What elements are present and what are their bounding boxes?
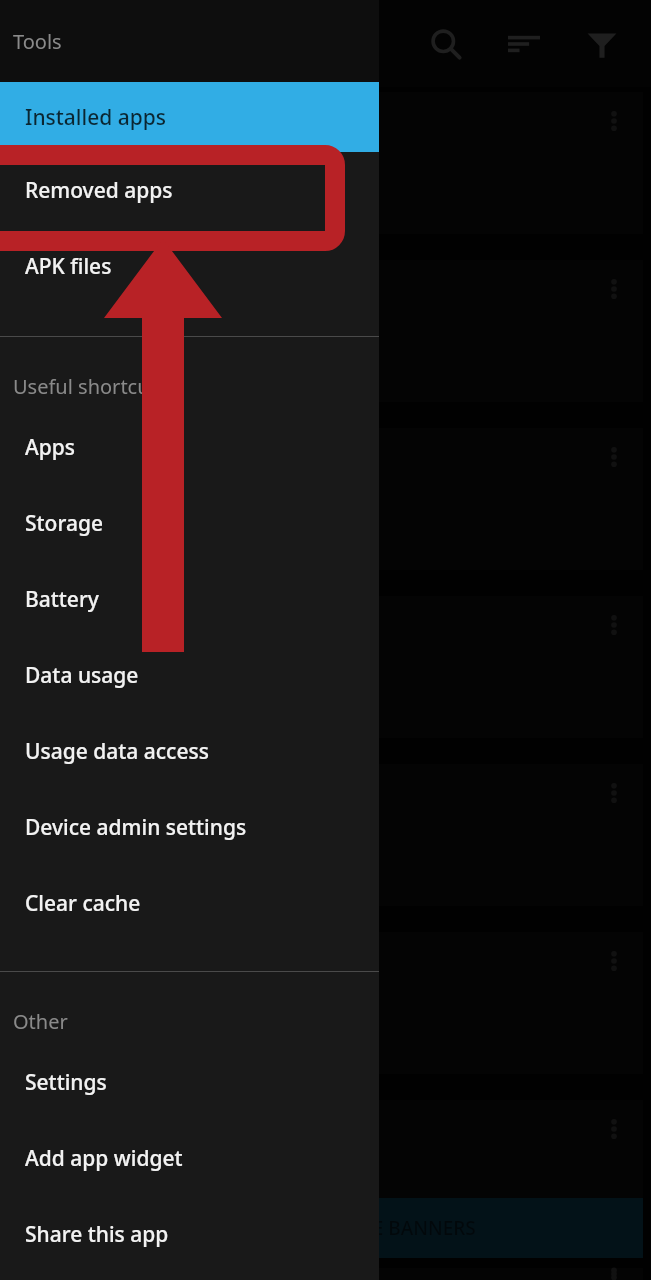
staticText: com.example.droid, date installed: 01/03…: [28, 485, 362, 539]
staticText: Apps: [25, 433, 76, 462]
staticText: Clear cache: [25, 889, 141, 918]
staticText: Device admin settings: [25, 813, 247, 842]
button[interactable]: com.example.droid, date installed: 01/03…: [8, 428, 643, 570]
staticText: com.example.torrz, date installed: 23/01…: [28, 149, 358, 203]
staticText: com.ghisler.android.TotalCommander, vers…: [28, 821, 365, 875]
button[interactable]: Apps: [0, 409, 379, 485]
staticText: Battery: [25, 585, 99, 614]
staticText: Installed apps: [25, 103, 166, 132]
staticText: Settings: [25, 1068, 107, 1097]
staticText: Other: [13, 1008, 68, 1035]
staticText: HIDE BANNERS: [338, 1215, 476, 1241]
button[interactable]: com.ghisler.android.TotalCommander, vers…: [8, 764, 643, 906]
button[interactable]: Device admin settings: [0, 789, 379, 865]
staticText: Data usage: [25, 661, 139, 690]
button[interactable]: com.example.android, date installed: 14/…: [8, 1100, 643, 1242]
button[interactable]: Removed apps: [0, 152, 379, 228]
staticText: Add app widget: [25, 1144, 183, 1173]
button[interactable]: More options: [585, 1268, 643, 1280]
button[interactable]: com.example.one, date installed: 02/05/2…: [8, 932, 643, 1074]
button[interactable]: Usage data access: [0, 713, 379, 789]
button[interactable]: com.x.y, date installed: 18/04/2023, ver…: [8, 596, 643, 738]
button[interactable]: com.example.torrz, date installed: 23/01…: [8, 92, 643, 234]
button[interactable]: Installed apps: [0, 82, 379, 152]
button[interactable]: com.example.player, date installed: 11/0…: [8, 260, 643, 402]
button[interactable]: com.example.shoplist, date installed: 18…: [8, 1268, 643, 1280]
button[interactable]: Filter: [563, 5, 641, 83]
staticText: Usage data access: [25, 737, 209, 766]
staticText: Share this app: [25, 1220, 169, 1249]
button[interactable]: Search: [407, 5, 485, 83]
button[interactable]: Storage: [0, 485, 379, 561]
staticText: Storage: [25, 509, 103, 538]
staticText: com.example.one, date installed: 02/05/2…: [28, 989, 358, 1043]
button[interactable]: Settings: [0, 1044, 379, 1120]
staticText: Removed apps: [25, 176, 173, 205]
button[interactable]: Share this app: [0, 1196, 379, 1272]
button[interactable]: HIDE BANNERS: [8, 1198, 643, 1258]
staticText: com.x.y, date installed: 18/04/2023, ver…: [28, 653, 343, 707]
button[interactable]: Add app widget: [0, 1120, 379, 1196]
staticText: com.example.android, date installed: 14/…: [28, 1157, 358, 1211]
button[interactable]: Battery: [0, 561, 379, 637]
button[interactable]: Sort: [485, 5, 563, 83]
button[interactable]: Clear cache: [0, 865, 379, 941]
button[interactable]: APK files: [0, 228, 379, 304]
staticText: Tools: [13, 28, 62, 55]
staticText: Useful shortcuts: [13, 373, 167, 400]
staticText: com.example.player, date installed: 11/0…: [28, 317, 353, 371]
button[interactable]: Data usage: [0, 637, 379, 713]
staticText: APK files: [25, 252, 112, 281]
